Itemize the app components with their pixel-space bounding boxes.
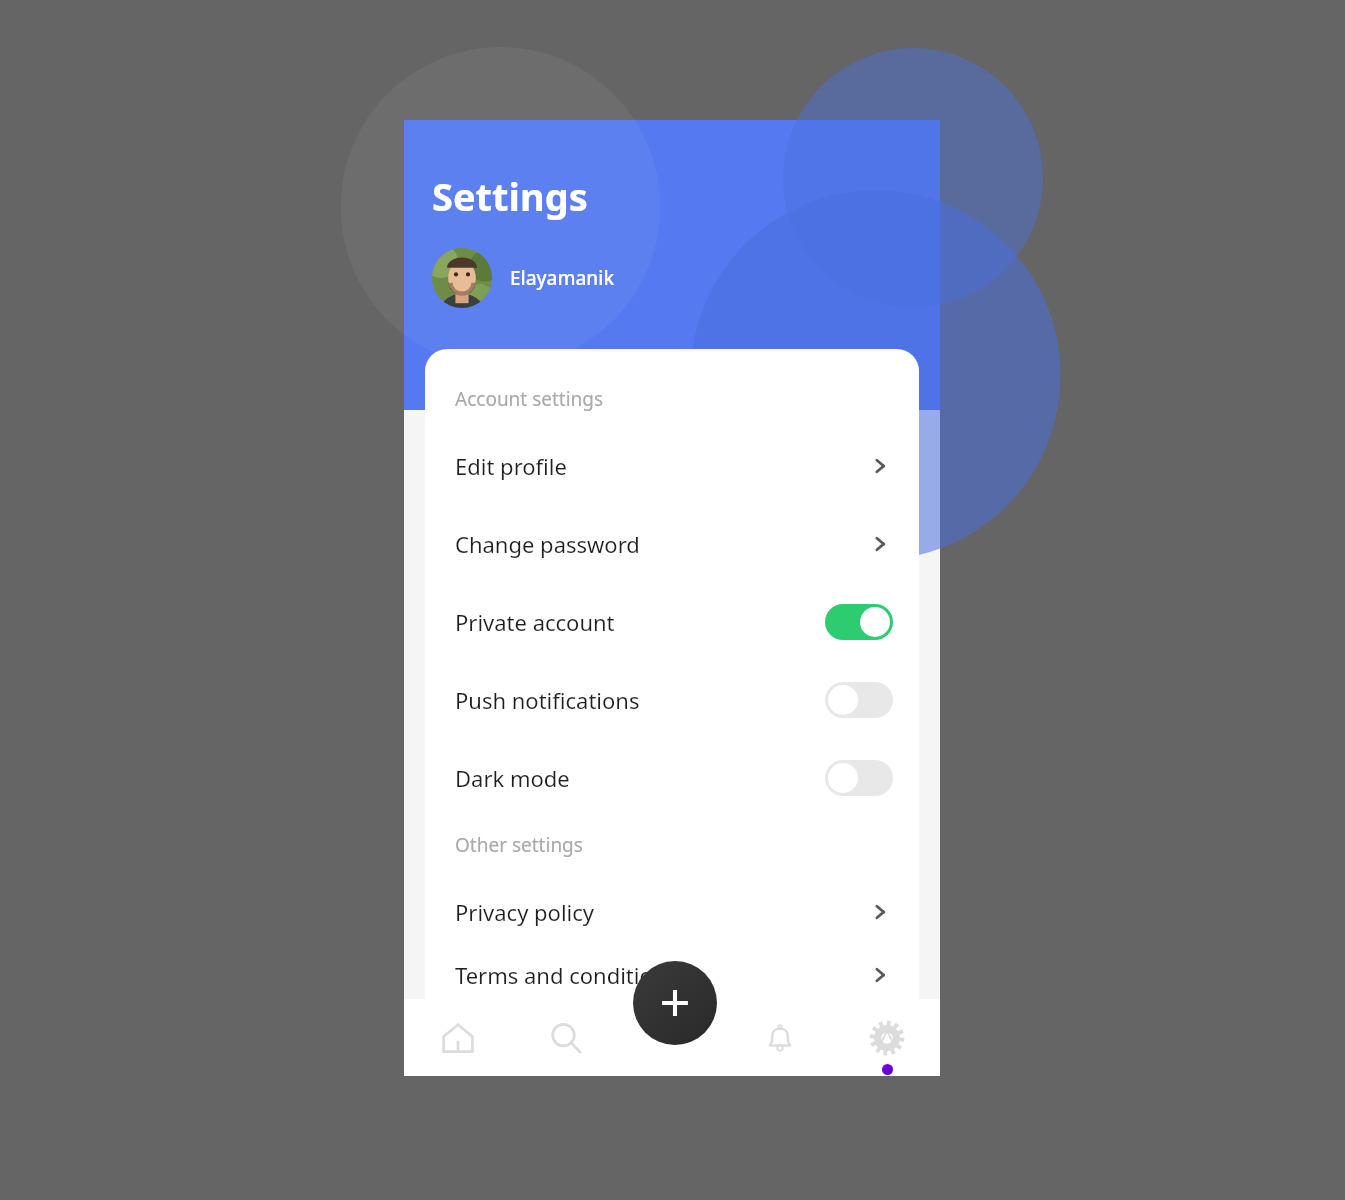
- button[interactable]: Toggle off: [825, 760, 893, 796]
- staticText: Terms and conditions: [455, 960, 867, 990]
- button[interactable]: Terms and conditions: [425, 951, 919, 999]
- staticText: Privacy policy: [455, 897, 867, 927]
- button[interactable]: Search: [512, 999, 619, 1076]
- staticText: Settings: [432, 170, 588, 222]
- button[interactable]: Toggle off: [825, 682, 893, 718]
- button[interactable]: Settings: [833, 999, 940, 1076]
- staticText: Change password: [455, 529, 867, 559]
- staticText: Private account: [455, 607, 825, 637]
- staticText: Other settings: [455, 832, 583, 858]
- button[interactable]: Change password: [425, 505, 919, 583]
- staticText: Edit profile: [455, 451, 867, 481]
- button[interactable]: Toggle on: [825, 604, 893, 640]
- button[interactable]: Edit profile: [425, 427, 919, 505]
- button[interactable]: Home: [404, 999, 512, 1076]
- staticText: Elayamanik: [510, 265, 615, 291]
- staticText: Push notifications: [455, 685, 825, 715]
- button[interactable]: Dark mode: [425, 739, 919, 817]
- button[interactable]: Notifications: [726, 999, 833, 1076]
- staticText: Account settings: [455, 386, 604, 412]
- button[interactable]: Private account: [425, 583, 919, 661]
- button[interactable]: Profile photo: [432, 248, 492, 308]
- button[interactable]: Add: [633, 961, 717, 1045]
- button[interactable]: Push notifications: [425, 661, 919, 739]
- staticText: Dark mode: [455, 763, 825, 793]
- button[interactable]: Privacy policy: [425, 873, 919, 951]
